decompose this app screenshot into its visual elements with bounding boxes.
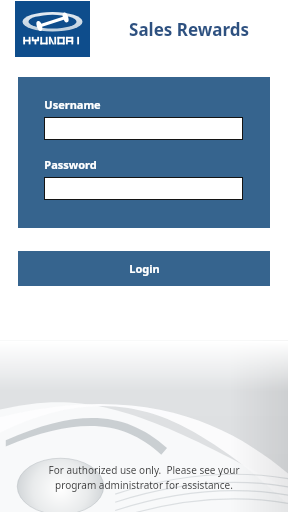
staticText: For authorized use only. Please see your	[48, 463, 240, 477]
staticText: Login	[129, 261, 160, 276]
staticText: Username	[44, 97, 101, 112]
button[interactable]	[44, 117, 243, 140]
button[interactable]	[44, 177, 243, 200]
staticText: Sales Rewards	[129, 18, 249, 41]
staticText: Password	[44, 157, 97, 172]
staticText: program administrator for assistance.	[55, 478, 233, 492]
other: Hyundai logo	[15, 1, 90, 57]
button[interactable]: Login	[18, 251, 270, 286]
